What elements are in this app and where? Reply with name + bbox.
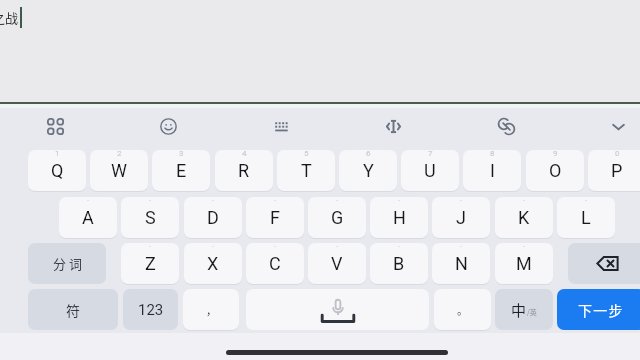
button[interactable]: 分 词 bbox=[28, 243, 106, 284]
staticText: · bbox=[212, 243, 215, 251]
button[interactable]: · bbox=[121, 243, 179, 284]
button[interactable]: · bbox=[246, 197, 304, 238]
button[interactable]: 符 bbox=[28, 289, 118, 330]
staticText: J bbox=[456, 207, 466, 228]
button[interactable]: Clipboard bbox=[487, 107, 525, 145]
staticText: 之战 bbox=[0, 8, 19, 27]
button[interactable]: · bbox=[246, 243, 304, 284]
staticText: 下一步 bbox=[578, 300, 624, 320]
button[interactable]: 2 bbox=[90, 150, 148, 191]
staticText: Q bbox=[51, 160, 64, 181]
staticText: · bbox=[398, 243, 401, 251]
staticText: 。 bbox=[457, 302, 468, 318]
staticText: Y bbox=[363, 160, 374, 181]
staticText: /英 bbox=[527, 307, 537, 317]
button[interactable]: · bbox=[432, 197, 490, 238]
staticText: Z bbox=[145, 253, 156, 274]
button[interactable]: 8 bbox=[463, 150, 521, 191]
button[interactable]: 下一步 bbox=[557, 289, 640, 330]
button[interactable]: 5 bbox=[277, 150, 335, 191]
button[interactable]: Space, voice input bbox=[246, 289, 429, 330]
staticText: · bbox=[336, 197, 339, 205]
staticText: 中 bbox=[511, 299, 527, 321]
staticText: H bbox=[393, 207, 406, 228]
staticText: M bbox=[516, 253, 532, 274]
button[interactable]: ， bbox=[183, 289, 239, 330]
button[interactable]: 123 bbox=[123, 289, 178, 330]
staticText: 分 词 bbox=[53, 254, 82, 273]
staticText: O bbox=[549, 160, 562, 181]
staticText: · bbox=[274, 243, 277, 251]
staticText: L bbox=[581, 207, 591, 228]
staticText: 123 bbox=[138, 301, 164, 319]
button[interactable]: 。 bbox=[434, 289, 491, 330]
button[interactable]: · bbox=[308, 243, 366, 284]
button[interactable]: 中 bbox=[495, 289, 553, 330]
staticText: 符 bbox=[66, 300, 80, 320]
staticText: T bbox=[301, 160, 312, 181]
button[interactable]: Keyboard settings bbox=[262, 107, 300, 145]
button[interactable]: · bbox=[184, 243, 242, 284]
staticText: · bbox=[336, 243, 339, 251]
button[interactable]: 9 bbox=[526, 150, 584, 191]
staticText: 5 bbox=[304, 150, 309, 158]
button[interactable]: 3 bbox=[152, 150, 210, 191]
staticText: N bbox=[455, 253, 468, 274]
staticText: · bbox=[87, 197, 90, 205]
button[interactable]: Hide keyboard bbox=[599, 107, 637, 145]
button[interactable]: Move cursor bbox=[374, 107, 412, 145]
button[interactable]: · bbox=[370, 243, 428, 284]
staticText: 1 bbox=[55, 150, 60, 158]
button[interactable]: 0 bbox=[588, 150, 640, 191]
staticText: R bbox=[238, 160, 250, 181]
staticText: 3 bbox=[179, 150, 184, 158]
staticText: D bbox=[207, 207, 219, 228]
button[interactable]: · bbox=[495, 243, 553, 284]
staticText: W bbox=[111, 160, 127, 181]
staticText: 0 bbox=[615, 150, 620, 158]
staticText: S bbox=[145, 207, 156, 228]
button[interactable]: · bbox=[184, 197, 242, 238]
staticText: 8 bbox=[490, 150, 495, 158]
button[interactable]: Backspace bbox=[568, 243, 640, 284]
staticText: K bbox=[518, 207, 530, 228]
button[interactable]: 1 bbox=[28, 150, 86, 191]
staticText: 4 bbox=[242, 150, 247, 158]
staticText: U bbox=[424, 160, 436, 181]
staticText: · bbox=[212, 197, 215, 205]
staticText: C bbox=[269, 253, 281, 274]
staticText: · bbox=[460, 243, 463, 251]
staticText: 2 bbox=[117, 150, 122, 158]
staticText: · bbox=[523, 197, 526, 205]
staticText: A bbox=[82, 207, 94, 228]
staticText: G bbox=[331, 207, 344, 228]
staticText: · bbox=[274, 197, 277, 205]
button[interactable]: 4 bbox=[215, 150, 273, 191]
staticText: · bbox=[149, 197, 152, 205]
staticText: V bbox=[331, 253, 343, 274]
staticText: E bbox=[176, 160, 187, 181]
staticText: 6 bbox=[366, 150, 371, 158]
staticText: · bbox=[585, 197, 588, 205]
button[interactable]: 6 bbox=[339, 150, 397, 191]
button[interactable]: · bbox=[557, 197, 615, 238]
button[interactable]: · bbox=[59, 197, 117, 238]
button[interactable]: · bbox=[308, 197, 366, 238]
staticText: · bbox=[398, 197, 401, 205]
staticText: 9 bbox=[553, 150, 558, 158]
button[interactable]: 7 bbox=[401, 150, 459, 191]
button[interactable]: · bbox=[495, 197, 553, 238]
button[interactable]: · bbox=[432, 243, 490, 284]
staticText: I bbox=[490, 160, 495, 181]
button[interactable]: Emoji bbox=[149, 107, 187, 145]
button[interactable]: · bbox=[370, 197, 428, 238]
staticText: X bbox=[207, 253, 219, 274]
staticText: P bbox=[611, 160, 623, 181]
button[interactable]: · bbox=[121, 197, 179, 238]
staticText: ， bbox=[206, 302, 217, 318]
button[interactable]: Keyboard layouts bbox=[36, 107, 74, 145]
staticText: 7 bbox=[428, 150, 433, 158]
staticText: B bbox=[393, 253, 405, 274]
staticText: F bbox=[270, 207, 280, 228]
staticText: · bbox=[149, 243, 152, 251]
